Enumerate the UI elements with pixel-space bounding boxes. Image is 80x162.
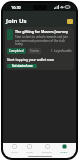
button[interactable]: Profile [59,144,69,153]
button[interactable]: Completed [7,48,26,54]
staticText: 10:30 [11,5,21,10]
button[interactable]: Rewards [41,144,53,153]
staticText: Start topping your wallet now [7,57,54,61]
button[interactable]: Wallet [25,144,34,153]
staticText: Join Us [6,17,27,25]
staticText: Rewards [42,150,52,153]
button[interactable]: Home [10,144,19,153]
staticText: Completed [9,49,24,53]
button[interactable]: 5 mins [28,48,41,54]
staticText: 1. Login/bundle [51,49,72,53]
staticText: Get started now [12,64,33,68]
staticText: Take a short to unlock rewards and join … [15,35,72,46]
staticText: 5 mins [30,49,39,53]
staticText: Profile [60,150,68,153]
staticText: Wallet [26,150,33,153]
staticText: Home [11,150,18,153]
button[interactable]: Get started now [7,64,37,68]
staticText: The gifting for Movers Journey [15,29,69,34]
button[interactable]: Rewards badge [67,19,73,24]
